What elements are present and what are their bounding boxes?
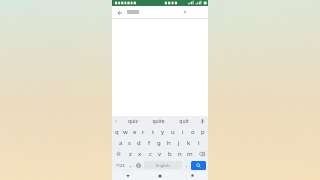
staticText: h bbox=[167, 139, 171, 147]
staticText: j bbox=[178, 139, 180, 147]
button[interactable]: c bbox=[145, 148, 155, 159]
staticText: English bbox=[156, 163, 170, 168]
button[interactable]: h bbox=[164, 137, 174, 148]
button[interactable]: a bbox=[116, 137, 125, 148]
button[interactable]: f bbox=[144, 137, 154, 148]
button[interactable]: m bbox=[185, 148, 195, 159]
staticText: g bbox=[157, 139, 161, 147]
button[interactable]: v bbox=[155, 148, 165, 159]
button[interactable]: l bbox=[194, 137, 204, 148]
button[interactable]: quit bbox=[171, 116, 197, 126]
staticText: quite bbox=[152, 118, 165, 125]
staticText: u bbox=[171, 128, 175, 136]
button[interactable]: z bbox=[125, 148, 135, 159]
staticText: quiz bbox=[128, 118, 138, 125]
staticText: r bbox=[142, 128, 145, 136]
staticText: e bbox=[133, 128, 137, 136]
staticText: , bbox=[130, 161, 132, 169]
button[interactable]: x bbox=[135, 148, 145, 159]
button[interactable]: , bbox=[127, 159, 134, 171]
button[interactable]: g bbox=[154, 137, 164, 148]
staticText: . bbox=[186, 161, 188, 169]
staticText: t bbox=[152, 128, 155, 136]
button[interactable]: k bbox=[184, 137, 194, 148]
staticText: z bbox=[129, 150, 132, 158]
button[interactable]: q bbox=[112, 126, 121, 137]
button[interactable]: Voice input bbox=[197, 116, 208, 126]
button[interactable]: Clear query bbox=[181, 8, 189, 16]
button[interactable]: e bbox=[130, 126, 139, 137]
staticText: l bbox=[198, 139, 200, 147]
button[interactable]: ?123 bbox=[113, 159, 127, 171]
staticText: k bbox=[187, 139, 191, 147]
staticText: s bbox=[128, 139, 131, 147]
staticText: i bbox=[182, 128, 184, 136]
staticText: y bbox=[161, 128, 165, 136]
button[interactable]: w bbox=[121, 126, 130, 137]
button[interactable]: Change keyboard bbox=[134, 159, 143, 171]
staticText: o bbox=[191, 128, 195, 136]
button[interactable]: Home bbox=[144, 171, 176, 180]
button[interactable]: Backspace bbox=[195, 148, 208, 159]
button[interactable]: . bbox=[183, 159, 190, 171]
button[interactable]: o bbox=[188, 126, 198, 137]
button[interactable]: y bbox=[158, 126, 168, 137]
button[interactable]: English bbox=[144, 161, 182, 169]
button[interactable]: u bbox=[168, 126, 178, 137]
button[interactable]: r bbox=[139, 126, 148, 137]
button[interactable]: d bbox=[134, 137, 144, 148]
button[interactable]: More suggestions bbox=[112, 116, 120, 126]
button[interactable]: quite bbox=[145, 116, 171, 126]
staticText: v bbox=[158, 150, 162, 158]
staticText: q bbox=[115, 128, 119, 136]
staticText: ?123 bbox=[116, 163, 125, 168]
staticText: d bbox=[137, 139, 141, 147]
button[interactable]: quiz bbox=[120, 116, 145, 126]
button[interactable]: j bbox=[174, 137, 184, 148]
staticText: b bbox=[168, 150, 172, 158]
staticText: m bbox=[187, 150, 193, 158]
staticText: w bbox=[123, 128, 128, 136]
staticText: f bbox=[148, 139, 151, 147]
button[interactable]: Shift bbox=[112, 148, 125, 159]
button[interactable]: p bbox=[198, 126, 208, 137]
button[interactable]: Back bbox=[112, 6, 208, 18]
staticText: n bbox=[178, 150, 182, 158]
staticText: quit bbox=[179, 118, 189, 125]
button[interactable]: Recent apps bbox=[176, 171, 208, 180]
button[interactable]: t bbox=[148, 126, 158, 137]
button[interactable]: n bbox=[175, 148, 185, 159]
staticText: a bbox=[119, 139, 123, 147]
button[interactable]: Back bbox=[112, 171, 144, 180]
button[interactable]: s bbox=[125, 137, 134, 148]
staticText: x bbox=[138, 150, 142, 158]
staticText: c bbox=[149, 150, 152, 158]
button[interactable]: b bbox=[165, 148, 175, 159]
button[interactable]: Back bbox=[115, 8, 124, 17]
staticText: p bbox=[201, 128, 205, 136]
button[interactable]: Search bbox=[191, 161, 206, 170]
button[interactable]: i bbox=[178, 126, 188, 137]
